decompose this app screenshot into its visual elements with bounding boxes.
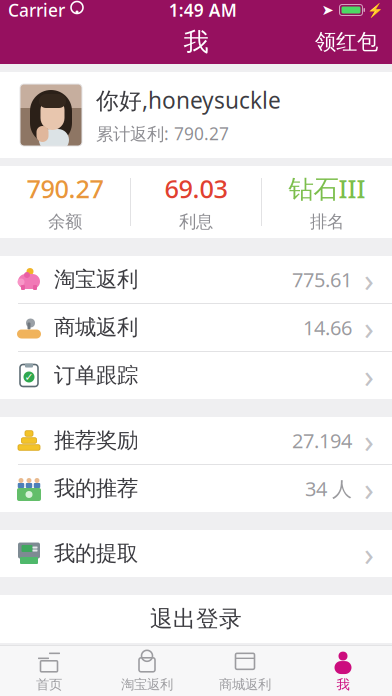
button[interactable]: 淘宝返利 bbox=[0, 256, 392, 303]
button[interactable]: 商城返利 bbox=[196, 646, 294, 696]
staticText: 排名 bbox=[310, 211, 344, 232]
staticText: 订单跟踪 bbox=[54, 362, 138, 389]
staticText: › bbox=[364, 419, 374, 462]
staticText: 34 人 bbox=[305, 475, 352, 502]
staticText: › bbox=[364, 258, 374, 301]
button[interactable]: 首页 bbox=[0, 646, 98, 696]
staticText: 14.66 bbox=[303, 314, 352, 341]
staticText: 775.61 bbox=[292, 266, 352, 293]
staticText: 钻石III bbox=[288, 171, 365, 205]
button[interactable]: 退出登录 bbox=[0, 595, 392, 643]
staticText: 推荐奖励 bbox=[54, 427, 138, 454]
staticText: 我 bbox=[336, 676, 349, 693]
staticText: 我的提取 bbox=[54, 540, 138, 567]
staticText: 你好,honeysuckle bbox=[96, 85, 281, 115]
staticText: 首页 bbox=[36, 676, 62, 693]
button[interactable]: ✓ bbox=[0, 352, 392, 399]
staticText: 领红包 bbox=[315, 29, 378, 55]
button[interactable]: 我的提取 bbox=[0, 530, 392, 577]
staticText: 商城返利 bbox=[219, 676, 271, 693]
staticText: Carrier bbox=[8, 0, 65, 21]
staticText: 累计返利: 790.27 bbox=[96, 122, 229, 145]
staticText: › bbox=[364, 306, 374, 349]
staticText: 退出登录 bbox=[150, 605, 242, 633]
button[interactable]: 69.03 bbox=[131, 166, 261, 238]
staticText: 790.27 bbox=[26, 171, 103, 205]
button[interactable]: 商城返利 bbox=[0, 304, 392, 351]
button[interactable]: 790.27 bbox=[0, 166, 130, 238]
staticText: 商城返利 bbox=[54, 314, 138, 341]
staticText: 27.194 bbox=[292, 427, 352, 454]
staticText: › bbox=[364, 467, 374, 510]
staticText: ✓ bbox=[24, 371, 33, 383]
button[interactable]: 我的推荐 bbox=[0, 465, 392, 512]
staticText: 淘宝返利 bbox=[121, 676, 173, 693]
button[interactable]: 推荐奖励 bbox=[0, 417, 392, 464]
staticText: › bbox=[364, 532, 374, 575]
button[interactable]: 淘宝返利 bbox=[98, 646, 196, 696]
staticText: ⚡ bbox=[367, 2, 384, 18]
staticText: 我 bbox=[183, 26, 208, 57]
staticText: 余额 bbox=[48, 211, 82, 232]
staticText: › bbox=[364, 354, 374, 397]
staticText: 利息 bbox=[179, 211, 213, 232]
staticText: ➤ bbox=[321, 2, 333, 18]
button[interactable]: 钻石III bbox=[262, 166, 392, 238]
staticText: 1:49 AM bbox=[169, 0, 237, 21]
staticText: 我的推荐 bbox=[54, 475, 138, 502]
staticText: 淘宝返利 bbox=[54, 266, 138, 293]
button[interactable]: 我 bbox=[294, 646, 392, 696]
button[interactable]: 领红包 bbox=[301, 19, 392, 65]
staticText: 69.03 bbox=[164, 171, 227, 205]
